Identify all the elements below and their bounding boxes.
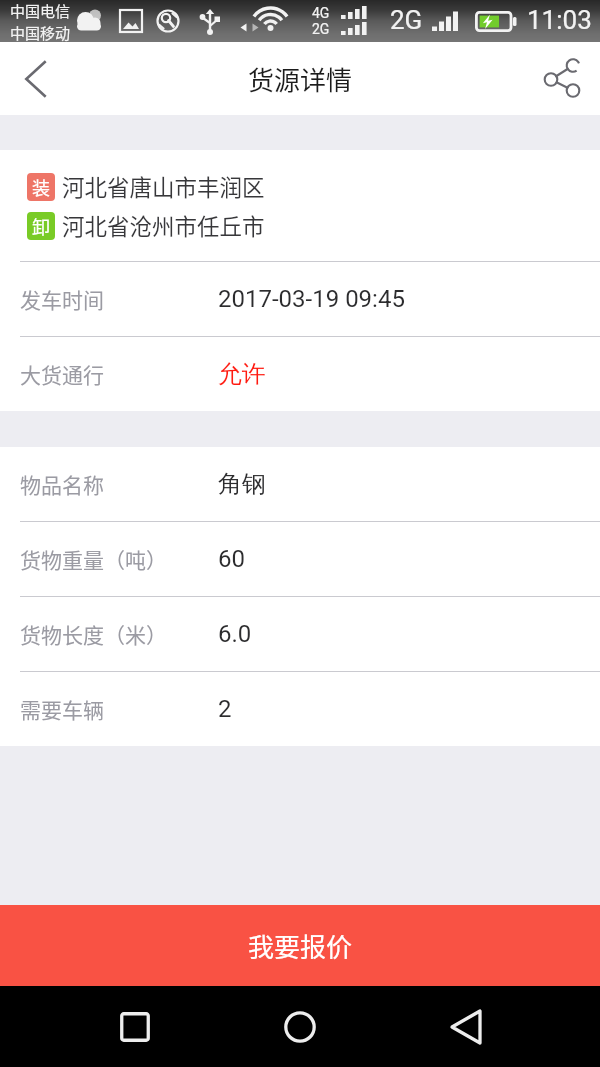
staticText: 货源详情: [248, 60, 353, 98]
staticText: 大货通行: [20, 359, 104, 389]
staticText: 河北省唐山市丰润区: [62, 170, 265, 203]
button[interactable]: 物品名称: [0, 447, 600, 521]
button[interactable]: 需要车辆: [0, 672, 600, 746]
staticText: 我要报价: [248, 927, 353, 965]
button[interactable]: Back: [426, 987, 506, 1067]
button[interactable]: Home: [260, 987, 340, 1067]
staticText: 卸: [32, 213, 50, 239]
staticText: 角钢: [218, 469, 266, 499]
button[interactable]: 货物重量（吨）: [0, 522, 600, 596]
button[interactable]: Recent apps: [95, 987, 175, 1067]
staticText: 物品名称: [20, 469, 104, 499]
button[interactable]: 货物长度（米）: [0, 597, 600, 671]
button[interactable]: 装: [0, 150, 600, 261]
staticText: 11:03: [527, 5, 592, 35]
staticText: 发车时间: [20, 284, 104, 314]
button[interactable]: Share: [524, 42, 600, 115]
button[interactable]: 我要报价: [0, 905, 600, 986]
staticText: 2017-03-19 09:45: [218, 285, 405, 313]
staticText: 货物长度（米）: [20, 619, 167, 649]
staticText: 4G: [312, 5, 330, 21]
staticText: 2G: [312, 21, 330, 37]
staticText: 河北省沧州市任丘市: [62, 209, 265, 242]
staticText: 中国电信: [10, 0, 71, 22]
staticText: 需要车辆: [20, 694, 104, 724]
button[interactable]: Back: [0, 42, 72, 115]
staticText: 货物重量（吨）: [20, 544, 167, 574]
staticText: 60: [218, 545, 245, 573]
staticText: 2G: [390, 5, 423, 35]
staticText: 允许: [218, 359, 266, 389]
staticText: 装: [32, 174, 50, 200]
staticText: 中国移动: [10, 22, 71, 42]
button[interactable]: 大货通行: [0, 337, 600, 411]
button[interactable]: 发车时间: [0, 262, 600, 336]
staticText: 6.0: [218, 620, 252, 648]
staticText: 2: [218, 695, 232, 723]
